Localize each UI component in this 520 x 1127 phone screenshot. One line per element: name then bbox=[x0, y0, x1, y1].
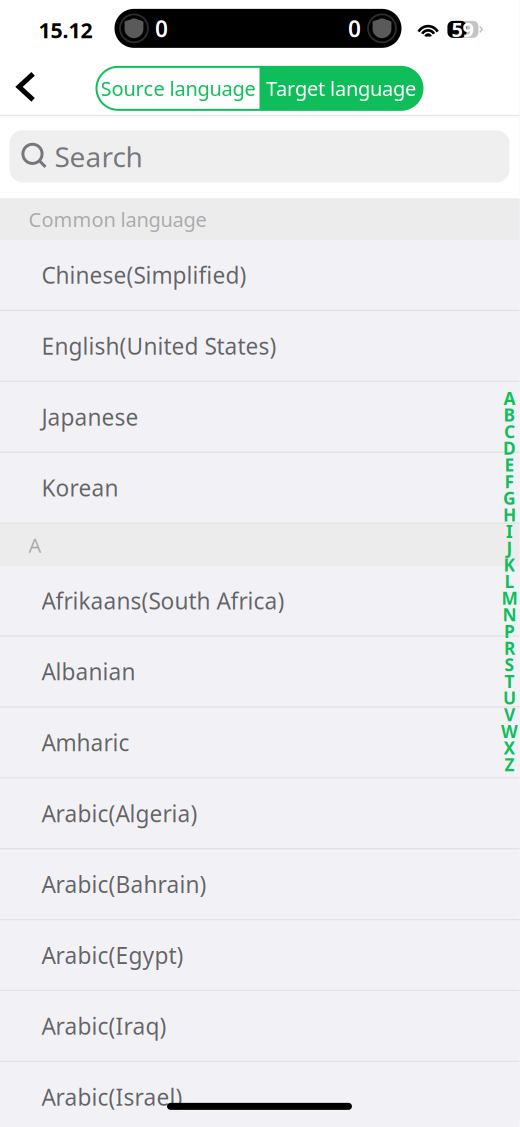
staticText: H bbox=[503, 503, 516, 526]
staticText: S bbox=[504, 653, 514, 676]
staticText: Amharic bbox=[41, 727, 129, 757]
staticText: J bbox=[506, 536, 512, 559]
staticText: U bbox=[503, 686, 516, 709]
button[interactable]: Back bbox=[0, 63, 53, 111]
button[interactable]: Chinese(Simplified) bbox=[0, 240, 519, 311]
button[interactable]: Afrikaans(South Africa) bbox=[0, 566, 519, 637]
staticText: F bbox=[504, 470, 514, 493]
button[interactable]: Amharic bbox=[0, 708, 519, 779]
staticText: C bbox=[504, 420, 515, 443]
button[interactable]: Source language bbox=[96, 67, 259, 110]
staticText: P bbox=[504, 620, 515, 643]
staticText: Arabic(Iraq) bbox=[41, 1011, 166, 1041]
staticText: K bbox=[503, 553, 515, 576]
button[interactable]: Alphabet index bbox=[0, 0, 520, 773]
staticText: G bbox=[503, 487, 516, 510]
staticText: 0 bbox=[155, 13, 168, 43]
button[interactable]: Korean bbox=[0, 453, 519, 524]
button[interactable]: Arabic(Algeria) bbox=[0, 779, 519, 850]
staticText: Arabic(Egypt) bbox=[41, 940, 183, 970]
staticText: 59 bbox=[451, 16, 473, 43]
staticText: Search bbox=[54, 138, 142, 175]
button[interactable]: Target language bbox=[259, 67, 422, 110]
staticText: Target language bbox=[266, 75, 416, 102]
staticText: Albanian bbox=[41, 656, 135, 687]
button[interactable]: English(United States) bbox=[0, 311, 519, 382]
button[interactable]: Arabic(Bahrain) bbox=[0, 850, 519, 920]
staticText: Z bbox=[504, 753, 514, 776]
staticText: Source language bbox=[100, 75, 255, 102]
staticText: Korean bbox=[41, 473, 118, 503]
staticText: X bbox=[503, 736, 515, 759]
staticText: Arabic(Israel) bbox=[41, 1082, 182, 1112]
staticText: E bbox=[504, 453, 514, 476]
staticText: B bbox=[503, 403, 515, 426]
button[interactable]: Arabic(Egypt) bbox=[0, 920, 519, 991]
staticText: W bbox=[501, 720, 518, 743]
staticText: 15.12 bbox=[38, 16, 92, 44]
staticText: Arabic(Bahrain) bbox=[41, 869, 206, 899]
staticText: D bbox=[503, 437, 516, 460]
staticText: R bbox=[504, 636, 515, 659]
button[interactable]: Albanian bbox=[0, 637, 519, 708]
staticText: Common language bbox=[28, 206, 206, 233]
staticText: I bbox=[506, 520, 513, 543]
staticText: N bbox=[502, 603, 516, 626]
staticText: T bbox=[504, 670, 514, 693]
staticText: V bbox=[504, 703, 515, 726]
staticText: L bbox=[504, 570, 514, 593]
staticText: English(United States) bbox=[41, 331, 276, 361]
staticText: M bbox=[501, 586, 517, 609]
staticText: Chinese(Simplified) bbox=[41, 260, 246, 290]
button[interactable]: Arabic(Israel) bbox=[0, 1062, 519, 1127]
staticText: Afrikaans(South Africa) bbox=[41, 586, 284, 616]
staticText: Arabic(Algeria) bbox=[41, 798, 197, 828]
button[interactable]: Arabic(Iraq) bbox=[0, 991, 519, 1062]
staticText: A bbox=[503, 387, 515, 410]
staticText: Japanese bbox=[41, 402, 138, 432]
button[interactable]: Japanese bbox=[0, 382, 519, 453]
staticText: A bbox=[28, 532, 41, 558]
staticText: 0 bbox=[348, 13, 361, 43]
